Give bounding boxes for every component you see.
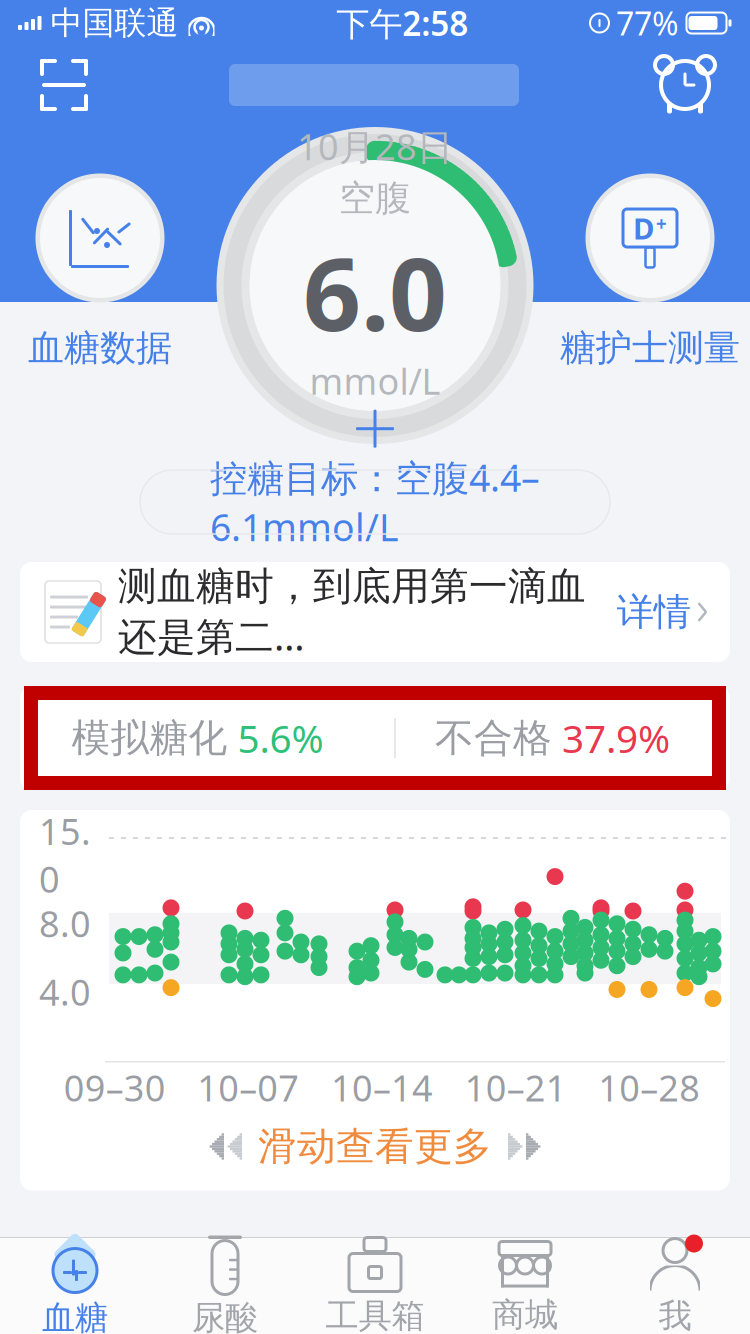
staticText: 血糖 bbox=[42, 1297, 108, 1334]
staticText: 10–07 bbox=[197, 1064, 299, 1111]
button[interactable]: 模拟糖化 bbox=[20, 686, 375, 790]
button[interactable]: 尿酸 bbox=[150, 1237, 300, 1334]
staticText: 详情 bbox=[617, 589, 691, 635]
staticText: 滑动查看更多 bbox=[258, 1123, 492, 1170]
staticText: 下午2:58 bbox=[336, 1, 468, 45]
staticText: 模拟糖化 bbox=[71, 714, 227, 762]
button[interactable]: 控糖目标：空腹4.4–6.1mmol/L bbox=[140, 470, 610, 534]
staticText: 10月28日 bbox=[297, 122, 453, 170]
staticText: + bbox=[656, 211, 667, 236]
button[interactable]: 测血糖时，到底用第一滴血还是第二… bbox=[20, 562, 730, 662]
staticText: D bbox=[633, 208, 654, 247]
button[interactable]: 提醒 bbox=[656, 55, 714, 115]
staticText: 10–14 bbox=[331, 1064, 433, 1111]
staticText: 4.0 bbox=[39, 968, 91, 1016]
button[interactable]: 血糖数据 bbox=[0, 172, 200, 370]
button[interactable]: 血糖 bbox=[0, 1237, 150, 1334]
button[interactable]: 扫一扫 bbox=[36, 56, 92, 114]
staticText: mmol/L bbox=[309, 357, 440, 405]
button[interactable]: 我 bbox=[600, 1237, 750, 1334]
staticText: 不合格 bbox=[435, 714, 552, 762]
button[interactable]: D bbox=[550, 172, 750, 370]
staticText: 8.0 bbox=[39, 899, 91, 947]
staticText: 空腹 bbox=[339, 176, 411, 220]
button[interactable]: 工具箱 bbox=[300, 1237, 450, 1334]
staticText: 糖护士测量 bbox=[560, 326, 740, 370]
staticText: 工具箱 bbox=[325, 1295, 424, 1334]
button[interactable]: 商城 bbox=[450, 1237, 600, 1334]
button[interactable]: 滑动查看更多 bbox=[209, 1116, 541, 1176]
staticText: 商城 bbox=[492, 1294, 558, 1334]
staticText: 我 bbox=[658, 1295, 691, 1334]
staticText: 37.9% bbox=[562, 712, 670, 764]
staticText: 中国联通 bbox=[50, 3, 178, 43]
staticText: 控糖目标：空腹4.4–6.1mmol/L bbox=[210, 452, 540, 552]
staticText: 09–30 bbox=[64, 1064, 166, 1111]
staticText: 10–28 bbox=[598, 1064, 700, 1111]
staticText: 血糖数据 bbox=[28, 326, 172, 370]
staticText: 测血糖时，到底用第一滴血还是第二… bbox=[118, 563, 586, 661]
staticText: 77% bbox=[616, 2, 679, 44]
staticText: 尿酸 bbox=[192, 1297, 258, 1334]
staticText: 15.0 bbox=[39, 807, 91, 903]
staticText: 6.0 bbox=[303, 224, 447, 359]
staticText: 10–21 bbox=[465, 1064, 567, 1111]
staticText: 5.6% bbox=[237, 712, 323, 764]
button[interactable]: 不合格 bbox=[375, 686, 730, 790]
